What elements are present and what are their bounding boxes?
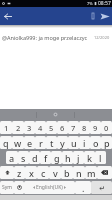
button[interactable]: 1 — [0, 121, 12, 134]
button[interactable]: Voice input — [14, 181, 24, 194]
button[interactable]: k — [84, 151, 95, 164]
staticText: l — [99, 152, 102, 164]
staticText: 3 — [27, 123, 32, 133]
staticText: 7% — [87, 1, 93, 6]
button[interactable]: n — [73, 166, 85, 179]
staticText: o — [93, 137, 99, 149]
button[interactable]: . — [75, 181, 91, 194]
staticText: 0 — [104, 123, 109, 133]
button[interactable]: i — [79, 136, 90, 149]
staticText: y — [60, 137, 65, 149]
staticText: h — [65, 152, 71, 164]
staticText: @Aniolka999: ja moge przelaczyc — [2, 34, 88, 41]
button[interactable]: y — [57, 136, 68, 149]
staticText: w — [14, 137, 22, 149]
staticText: s — [21, 152, 26, 164]
button[interactable]: Send — [98, 7, 112, 25]
staticText: q — [3, 137, 9, 149]
button[interactable]: a — [6, 151, 18, 164]
button[interactable]: x — [25, 166, 37, 179]
button[interactable]: f — [40, 151, 51, 164]
button[interactable]: Back — [0, 7, 16, 25]
button[interactable]: g — [51, 151, 62, 164]
button[interactable]: Keyboard settings — [37, 109, 74, 120]
button[interactable]: j — [73, 151, 84, 164]
button[interactable]: Enter — [91, 181, 112, 194]
button[interactable]: v — [49, 166, 61, 179]
staticText: 8 — [82, 123, 87, 133]
staticText: 6 — [60, 123, 65, 133]
button[interactable]: 3 — [24, 121, 35, 134]
staticText: 9 — [93, 123, 98, 133]
button[interactable]: s — [18, 151, 29, 164]
button[interactable]: 7 — [68, 121, 79, 134]
staticText: 5 — [49, 123, 54, 133]
staticText: z — [17, 167, 22, 179]
staticText: 2 — [16, 123, 21, 133]
staticText: a — [9, 152, 15, 164]
staticText: x — [29, 167, 34, 179]
button[interactable]: 9 — [90, 121, 101, 134]
button[interactable]: d — [29, 151, 40, 164]
staticText: i — [83, 137, 86, 149]
button[interactable]: e — [24, 136, 35, 149]
button[interactable]: b — [61, 166, 73, 179]
staticText: d — [32, 152, 38, 164]
staticText: u — [71, 137, 77, 149]
staticText: English(UK) — [36, 184, 63, 191]
button[interactable]: Shift — [0, 166, 14, 179]
button[interactable]: Backspace — [97, 166, 112, 179]
staticText: 4 — [38, 123, 43, 133]
staticText: 7 — [71, 123, 76, 133]
button[interactable]: English(UK) — [24, 181, 75, 194]
staticText: k — [87, 152, 93, 164]
button[interactable]: 0 — [101, 121, 112, 134]
button[interactable]: z — [14, 166, 25, 179]
button[interactable]: m — [85, 166, 97, 179]
staticText: r — [39, 137, 43, 149]
staticText: f — [44, 152, 48, 164]
button[interactable]: 4 — [35, 121, 46, 134]
staticText: v — [53, 167, 58, 179]
button[interactable]: w — [12, 136, 24, 149]
button[interactable]: h — [62, 151, 73, 164]
button[interactable]: Attach — [88, 7, 98, 25]
staticText: n — [76, 167, 82, 179]
staticText: c — [41, 167, 46, 179]
staticText: 08:57 — [98, 0, 111, 7]
button[interactable]: u — [68, 136, 79, 149]
staticText: b — [64, 167, 70, 179]
button[interactable]: r — [35, 136, 46, 149]
button[interactable]: 8 — [79, 121, 90, 134]
button[interactable]: Sym — [0, 181, 14, 194]
button[interactable]: p — [101, 136, 112, 149]
staticText: p — [104, 137, 110, 149]
staticText: e — [27, 137, 33, 149]
staticText: g — [54, 152, 60, 164]
staticText: 1 — [4, 123, 9, 133]
button[interactable]: c — [37, 166, 49, 179]
button[interactable]: o — [90, 136, 101, 149]
button[interactable]: 6 — [57, 121, 68, 134]
staticText: t — [50, 137, 54, 149]
staticText: m — [87, 167, 96, 179]
staticText: . — [82, 182, 85, 194]
staticText: 12/2020 — [94, 35, 110, 40]
button[interactable]: 2 — [12, 121, 24, 134]
staticText: j — [77, 152, 80, 164]
button[interactable]: l — [95, 151, 106, 164]
button[interactable]: 5 — [46, 121, 57, 134]
button[interactable]: q — [0, 136, 12, 149]
button[interactable]: t — [46, 136, 57, 149]
staticText: Sym — [2, 184, 12, 191]
